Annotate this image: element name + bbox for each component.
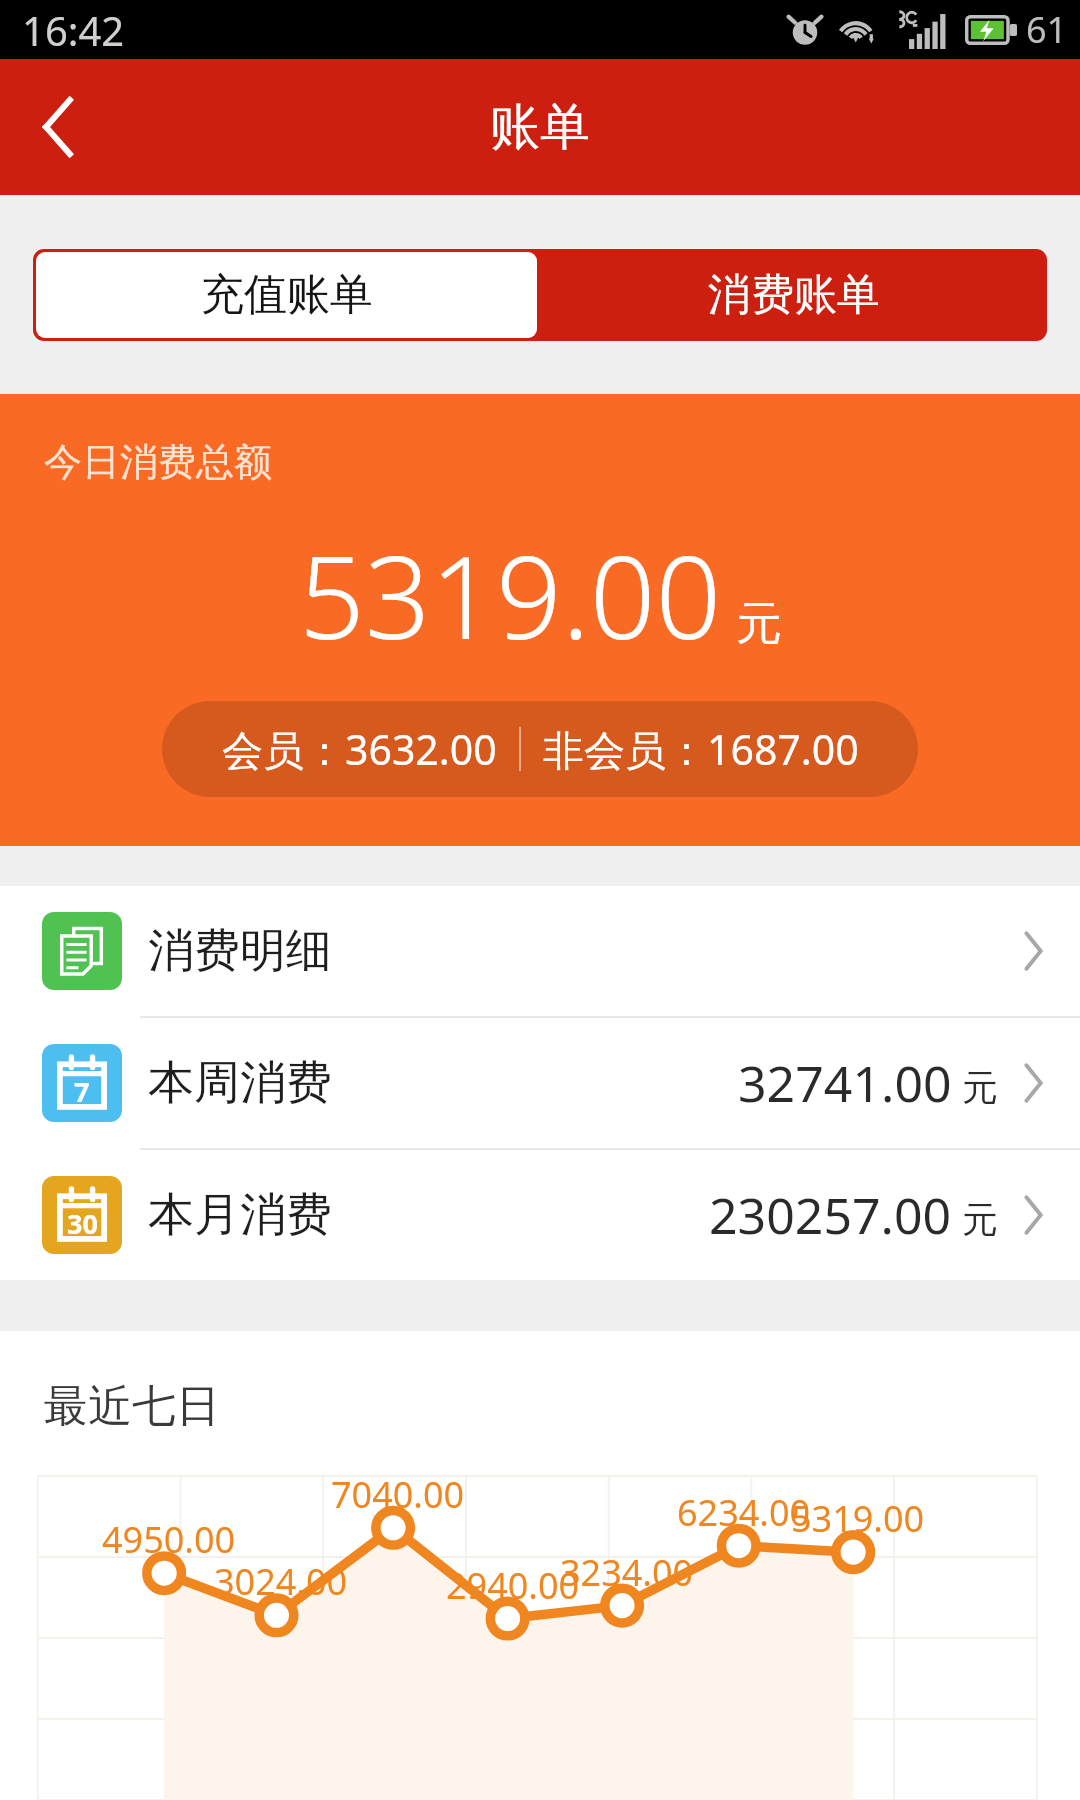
staticText: 充值账单 — [201, 268, 373, 322]
button[interactable]: 消费账单 — [540, 249, 1047, 341]
staticText: 非会员：1687.00 — [543, 721, 859, 777]
staticText: 2940.00 — [446, 1561, 580, 1610]
staticText: 会员：3632.00 — [222, 721, 497, 777]
staticText: 32741.00 — [738, 1049, 952, 1117]
button[interactable]: 7 — [0, 1018, 1080, 1148]
staticText: 16:42 — [22, 3, 125, 57]
staticText: 5319.00 — [299, 516, 722, 673]
staticText: 本月消费 — [148, 1186, 332, 1244]
button[interactable]: 消费明细 — [0, 886, 1080, 1016]
staticText: 元 — [962, 1065, 998, 1110]
staticText: 消费明细 — [148, 922, 332, 980]
staticText: 今日消费总额 — [44, 438, 272, 486]
staticText: 5319.00 — [791, 1494, 925, 1543]
staticText: 元 — [962, 1197, 998, 1242]
staticText: 本周消费 — [148, 1054, 332, 1112]
staticText: 3234.00 — [560, 1548, 694, 1597]
staticText: 61 — [1026, 5, 1068, 54]
staticText: 230257.00 — [709, 1181, 952, 1249]
staticText: 7040.00 — [331, 1470, 465, 1519]
staticText: 7 — [74, 1073, 90, 1109]
staticText: 消费账单 — [708, 268, 880, 322]
button[interactable]: 30 — [0, 1150, 1080, 1280]
button[interactable]: 充值账单 — [36, 252, 537, 338]
staticText: 元 — [736, 595, 782, 653]
staticText: 3024.00 — [214, 1557, 348, 1606]
staticText: 4950.00 — [102, 1515, 236, 1564]
staticText: 最近七日 — [44, 1379, 220, 1434]
staticText: 账单 — [490, 96, 590, 159]
staticText: 30 — [67, 1205, 98, 1241]
staticText: 6234.00 — [677, 1488, 811, 1537]
button[interactable]: Back — [0, 59, 118, 195]
